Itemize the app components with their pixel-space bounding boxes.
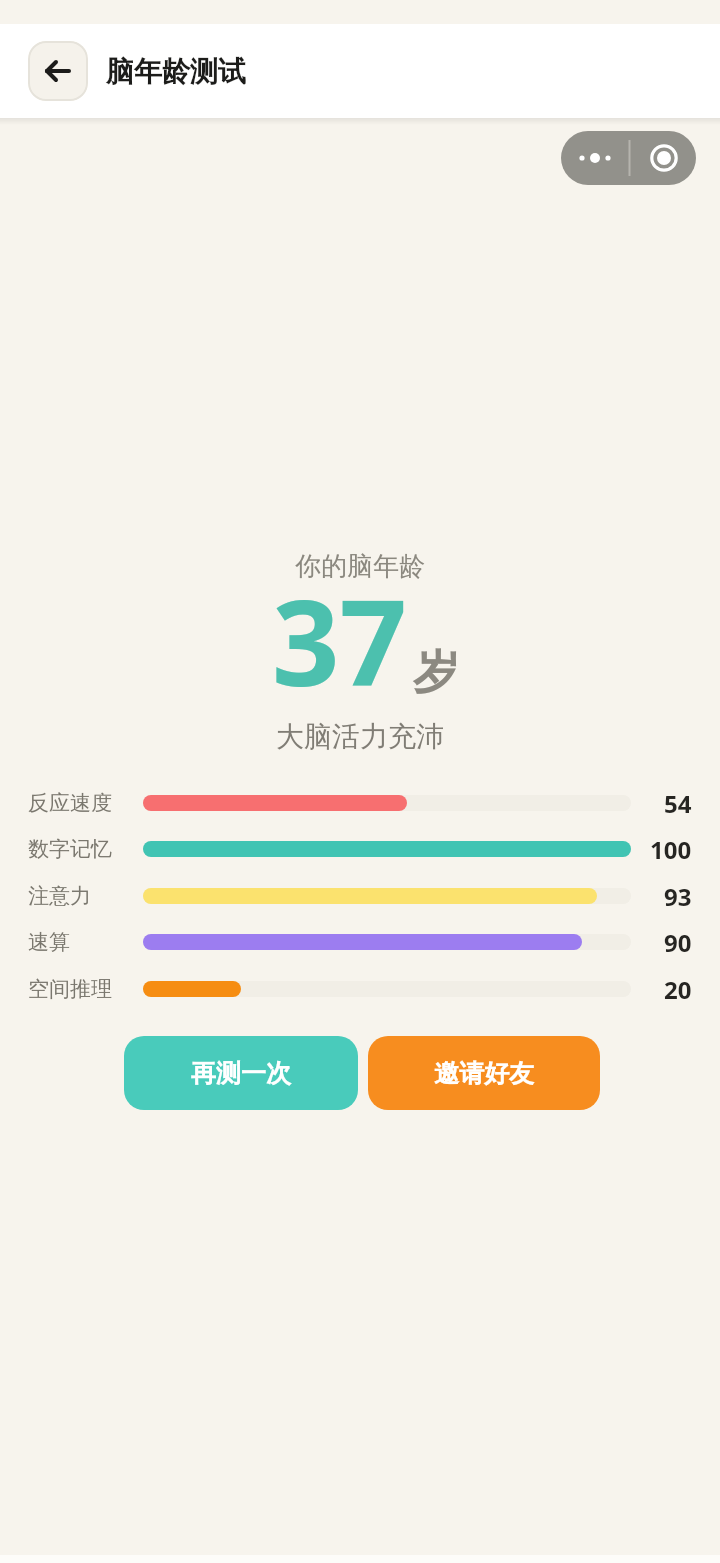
staticText: 数字记忆: [28, 836, 112, 862]
staticText: 20: [664, 973, 692, 1006]
staticText: 空间推理: [28, 976, 112, 1002]
staticText: 90: [664, 926, 692, 959]
staticText: 注意力: [28, 883, 91, 909]
staticText: 大脑活力充沛: [276, 719, 444, 751]
staticText: 再测一次: [191, 1058, 291, 1089]
button[interactable]: [28, 41, 88, 101]
staticText: 岁: [413, 644, 459, 702]
staticText: 邀请好友: [434, 1058, 534, 1089]
staticText: 速算: [28, 929, 70, 955]
staticText: 反应速度: [28, 790, 112, 816]
staticText: 你的脑年龄: [295, 550, 425, 582]
staticText: 54: [664, 787, 692, 820]
staticText: 37: [272, 560, 407, 690]
button[interactable]: [561, 131, 696, 185]
button[interactable]: 再测一次: [124, 1036, 358, 1110]
staticText: 100: [650, 833, 692, 866]
staticText: 脑年龄测试: [106, 54, 246, 89]
staticText: 93: [664, 880, 692, 913]
button[interactable]: 邀请好友: [368, 1036, 600, 1110]
